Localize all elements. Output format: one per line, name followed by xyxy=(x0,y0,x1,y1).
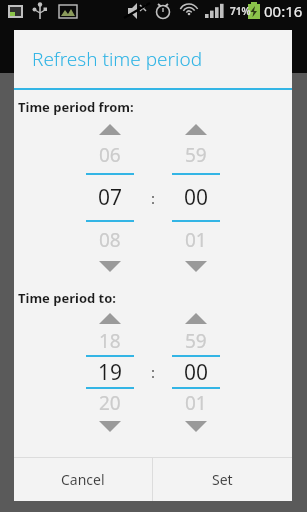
staticText: 08 xyxy=(99,227,121,253)
staticText: 00:16 xyxy=(264,1,303,21)
staticText: 18 xyxy=(99,328,121,354)
button[interactable]: Increment Hours xyxy=(87,120,133,138)
button[interactable]: Increment Minutes xyxy=(173,309,219,327)
staticText: Set xyxy=(212,470,233,489)
button[interactable]: Decrement Hours xyxy=(87,417,133,435)
staticText: 06 xyxy=(99,142,121,168)
staticText: Time period from: xyxy=(18,98,292,116)
button[interactable]: 00 xyxy=(172,175,220,220)
staticText: : xyxy=(151,188,156,208)
staticText: 59 xyxy=(185,328,207,354)
button[interactable]: Decrement Hours xyxy=(87,257,133,275)
button[interactable]: Increment Minutes xyxy=(173,120,219,138)
staticText: Refresh time period xyxy=(32,46,203,72)
staticText: 00 xyxy=(184,358,209,387)
button[interactable]: 19 xyxy=(86,357,134,387)
staticText: 20 xyxy=(99,390,121,416)
staticText: 01 xyxy=(185,227,207,253)
staticText: Cancel xyxy=(61,470,105,489)
button[interactable]: 07 xyxy=(86,175,134,220)
staticText: : xyxy=(151,362,156,382)
staticText: 71% xyxy=(230,4,251,18)
button[interactable]: 00 xyxy=(172,357,220,387)
button[interactable]: Decrement Minutes xyxy=(173,417,219,435)
staticText: 59 xyxy=(185,142,207,168)
button[interactable]: Cancel xyxy=(14,458,152,501)
staticText: 19 xyxy=(98,358,123,387)
staticText: 07 xyxy=(98,183,123,212)
button[interactable]: Increment Hours xyxy=(87,309,133,327)
staticText: Time period to: xyxy=(18,289,292,307)
staticText: 01 xyxy=(185,390,207,416)
button[interactable]: Decrement Minutes xyxy=(173,257,219,275)
button[interactable]: Set xyxy=(153,458,292,501)
staticText: 00 xyxy=(184,183,209,212)
